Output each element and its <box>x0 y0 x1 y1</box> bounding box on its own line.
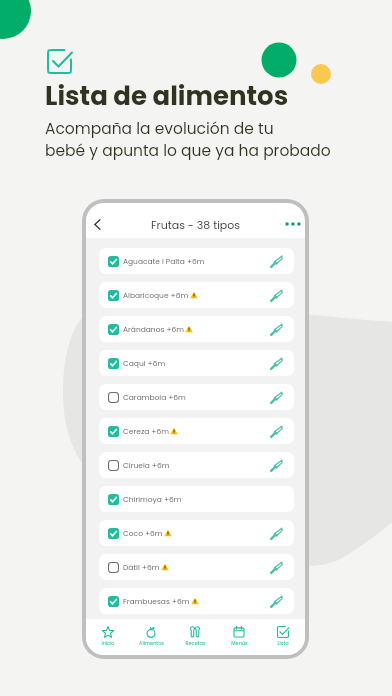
staticText: Inicio <box>101 640 115 647</box>
staticText: Dátil +6m <box>123 562 160 572</box>
button[interactable]: More options <box>283 214 303 234</box>
button[interactable]: Alimentos <box>129 619 173 647</box>
button[interactable]: Caqui +6m <box>99 350 294 376</box>
staticText: Ciruela +6m <box>123 460 170 470</box>
button[interactable]: Aguacate I Palta +6m <box>99 248 294 274</box>
staticText: Lista <box>277 640 289 647</box>
staticText: Frutas - 38 tipos <box>151 217 241 232</box>
button[interactable]: Coco +6m <box>99 520 294 546</box>
button[interactable]: Lista <box>261 619 305 647</box>
staticText: Aguacate I Palta +6m <box>123 256 205 266</box>
staticText: Alimentos <box>139 640 164 647</box>
staticText: Carambola +6m <box>123 392 186 402</box>
staticText: Albaricoque +6m <box>123 290 189 300</box>
staticText: Cereza +6m <box>123 426 169 436</box>
button[interactable]: Inicio <box>86 619 129 647</box>
staticText: Chirimoya +6m <box>123 494 182 504</box>
staticText: Recetas <box>185 640 206 647</box>
button[interactable]: Chirimoya +6m <box>99 486 294 512</box>
staticText: Acompaña la evolución de tu bebé y apunt… <box>45 118 331 162</box>
staticText: Coco +6m <box>123 528 163 538</box>
staticText: Caqui +6m <box>123 358 166 368</box>
staticText: Lista de alimentos <box>45 78 289 114</box>
button[interactable]: Albaricoque +6m <box>99 282 294 308</box>
button[interactable]: Carambola +6m <box>99 384 294 410</box>
button[interactable]: Recetas <box>173 619 217 647</box>
button[interactable]: Arándanos +6m <box>99 316 294 342</box>
staticText: Frambuesas +6m <box>123 596 190 606</box>
button[interactable]: Dátil +6m <box>99 554 294 580</box>
button[interactable]: Menús <box>217 619 261 647</box>
staticText: Arándanos +6m <box>123 324 184 334</box>
button[interactable]: Cereza +6m <box>99 418 294 444</box>
button[interactable]: Ciruela +6m <box>99 452 294 478</box>
staticText: Menús <box>231 640 248 647</box>
button[interactable]: Frambuesas +6m <box>99 588 294 614</box>
button[interactable]: Back <box>87 214 107 234</box>
